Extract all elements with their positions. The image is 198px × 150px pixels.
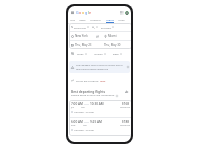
- staticText: Explore: [79, 18, 86, 21]
- staticText: Economy: [101, 26, 112, 29]
- staticText: Best departing flights: [71, 89, 106, 93]
- staticText: Bags: [113, 52, 119, 55]
- staticText: Miami: [108, 34, 117, 38]
- staticText: EWR: [71, 124, 76, 127]
- button[interactable]: The cheapest time to book is usually one…: [69, 61, 130, 73]
- staticText: Hotels: [118, 18, 125, 21]
- staticText: Round trip: [74, 26, 86, 29]
- button[interactable]: G: [76, 10, 92, 15]
- button[interactable]: 6:00 AM: [69, 118, 131, 135]
- staticText: Flights: [106, 18, 114, 21]
- staticText: g: [85, 10, 88, 15]
- staticText: 6:00 AM: [71, 120, 83, 124]
- button[interactable]: 7:00 AM: [69, 100, 131, 117]
- button[interactable]: Explore: [79, 18, 86, 24]
- staticText: G: [76, 10, 79, 15]
- staticText: 7:00 AM: [71, 102, 83, 106]
- staticText: Ranked based on price and convenience: [71, 94, 115, 97]
- staticText: MIA: [83, 124, 87, 127]
- button[interactable]: Stops: [77, 52, 87, 55]
- staticText: Thu, May 23: [75, 43, 92, 47]
- staticText: Nonstop · 3h 25m: [74, 128, 94, 131]
- button[interactable]: Bags: [113, 52, 122, 55]
- staticText: 9:25 AM: [90, 120, 102, 124]
- staticText: $168: [122, 102, 130, 106]
- button[interactable]: Google apps: [120, 11, 123, 14]
- staticText: l: [88, 10, 89, 15]
- button[interactable]: Airlines: [94, 52, 106, 55]
- button[interactable]: Google Account: [125, 11, 129, 15]
- staticText: JFK: [71, 106, 74, 109]
- staticText: Stops: [77, 52, 84, 55]
- button[interactable]: Price graph: [125, 90, 128, 93]
- staticText: New York: [75, 34, 88, 38]
- button[interactable]: All filters: [71, 52, 74, 55]
- staticText: Travel: [70, 18, 75, 21]
- button[interactable]: Swap origin and destination: [96, 35, 99, 38]
- staticText: Things to do: [89, 18, 102, 21]
- staticText: o: [82, 10, 85, 15]
- staticText: round trip: [120, 124, 130, 127]
- staticText: round trip: [120, 106, 130, 109]
- button[interactable]: Things to do: [89, 18, 102, 24]
- staticText: $188: [122, 120, 130, 124]
- staticText: high: [100, 79, 106, 82]
- staticText: The cheapest time to book is usually one…: [76, 64, 126, 70]
- staticText: Airlines: [94, 52, 103, 55]
- staticText: 10:30 AM: [90, 102, 104, 106]
- staticText: MIA: [81, 106, 85, 109]
- button[interactable]: Flights: [106, 18, 114, 24]
- button[interactable]: Main menu: [71, 11, 74, 14]
- button[interactable]: Hotels: [118, 18, 125, 24]
- staticText: 1: [94, 26, 96, 29]
- staticText: e: [89, 10, 92, 15]
- staticText: Nonstop · 3h 30m: [74, 110, 94, 113]
- button[interactable]: Travel: [70, 18, 75, 24]
- staticText: Prices are currently: [76, 79, 100, 82]
- staticText: o: [79, 10, 82, 15]
- staticText: Thu, May 30: [104, 43, 121, 47]
